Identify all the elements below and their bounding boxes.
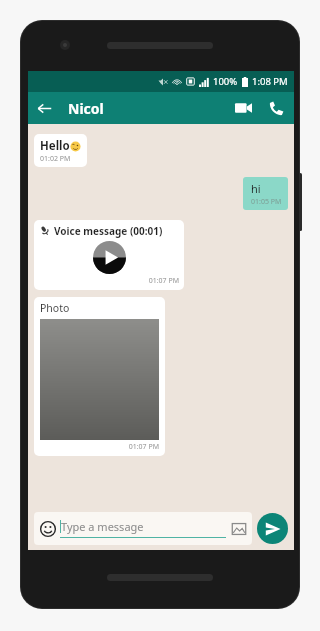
button[interactable]: Emoji (39, 520, 56, 537)
staticText: hi (251, 181, 261, 196)
staticText: Type a message (61, 519, 144, 534)
staticText: 01:07 PM (40, 442, 159, 452)
button[interactable]: Voice message (00:01) (34, 220, 184, 290)
button[interactable]: Send (257, 513, 288, 544)
staticText: 01:07 PM (39, 276, 179, 286)
button[interactable]: Photo (34, 297, 165, 456)
button[interactable]: hi (243, 177, 288, 210)
staticText: 01:05 PM (251, 197, 282, 207)
staticText: Nicol (68, 99, 104, 118)
staticText: 100% (213, 75, 238, 88)
button[interactable]: Hello (34, 134, 87, 167)
staticText: 01:02 PM (40, 154, 71, 164)
button[interactable]: Emoji (34, 512, 252, 545)
staticText: Voice message (00:01) (54, 224, 163, 238)
button[interactable]: Play voice message (93, 241, 126, 274)
button[interactable]: Video call (226, 92, 260, 124)
button[interactable]: Attach image (230, 520, 247, 537)
staticText: Photo (40, 301, 70, 315)
button[interactable]: Back (28, 92, 60, 124)
staticText: Hello (40, 138, 70, 154)
button[interactable]: Voice call (260, 92, 292, 124)
staticText: 1:08 PM (252, 75, 288, 88)
